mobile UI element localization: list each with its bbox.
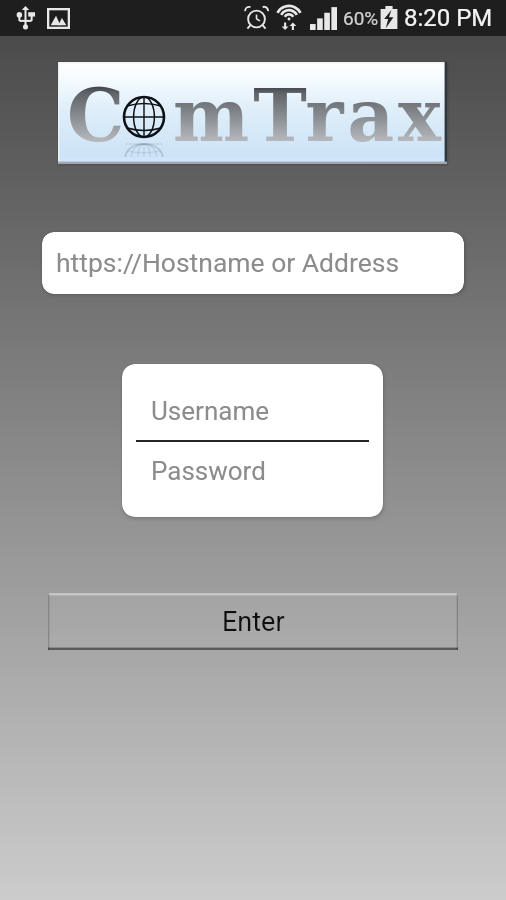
button[interactable]: Password [122, 441, 383, 517]
staticText: C [67, 73, 129, 158]
staticText: mTrax [173, 73, 446, 158]
staticText: https://Hostname or Address [56, 247, 400, 278]
button[interactable]: Enter [48, 593, 458, 650]
button[interactable]: Username [122, 364, 383, 440]
button[interactable]: https://Hostname or Address [42, 232, 464, 294]
staticText: 60% [343, 7, 379, 29]
staticText: Password [151, 456, 266, 486]
staticText: 8:20 PM [404, 4, 493, 32]
staticText: Enter [222, 606, 285, 638]
staticText: Username [151, 396, 269, 426]
